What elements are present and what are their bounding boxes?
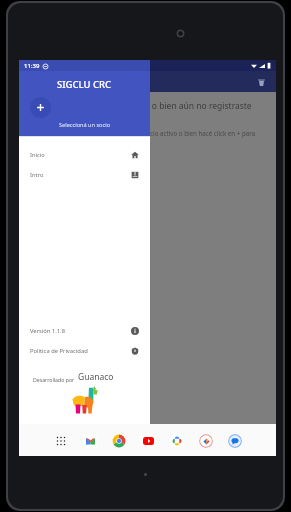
staticText: Versión 1.1.8 (30, 327, 131, 335)
button[interactable]: Agregar socio (30, 97, 51, 118)
button[interactable]: SIGCLU CRC (19, 71, 150, 136)
button[interactable]: Chrome (110, 432, 127, 449)
staticText: Desarrollado por (33, 376, 75, 383)
staticText: 11:39 (24, 62, 40, 70)
staticText: Vas a necesitar el número de socio y dni (29, 151, 145, 159)
button[interactable]: Gmail (81, 432, 98, 449)
button[interactable]: Messages (226, 432, 243, 449)
button[interactable]: YouTube (139, 432, 156, 449)
button[interactable]: Política de Privacidad (19, 341, 150, 361)
button[interactable]: Delete (254, 75, 268, 89)
button[interactable]: Intro (19, 165, 150, 185)
staticText: No seleccionaste ningún socio o bien aún… (29, 100, 266, 122)
button[interactable]: Apps (52, 432, 69, 449)
staticText: Política de Privacidad (30, 347, 131, 355)
staticText: Seleccioná un socio (59, 121, 111, 129)
button[interactable]: Inicio (19, 145, 150, 165)
staticText: Intro (30, 171, 131, 179)
button[interactable]: Photos (168, 432, 185, 449)
staticText: Guanaco (78, 371, 114, 383)
staticText: Para continuar, por favor seleccioná un … (29, 129, 266, 145)
staticText: SIGCLU CRC (57, 78, 112, 91)
staticText: Inicio (30, 151, 131, 159)
button[interactable]: Versión 1.1.8 (19, 321, 150, 341)
button[interactable]: Authenticator (197, 432, 214, 449)
